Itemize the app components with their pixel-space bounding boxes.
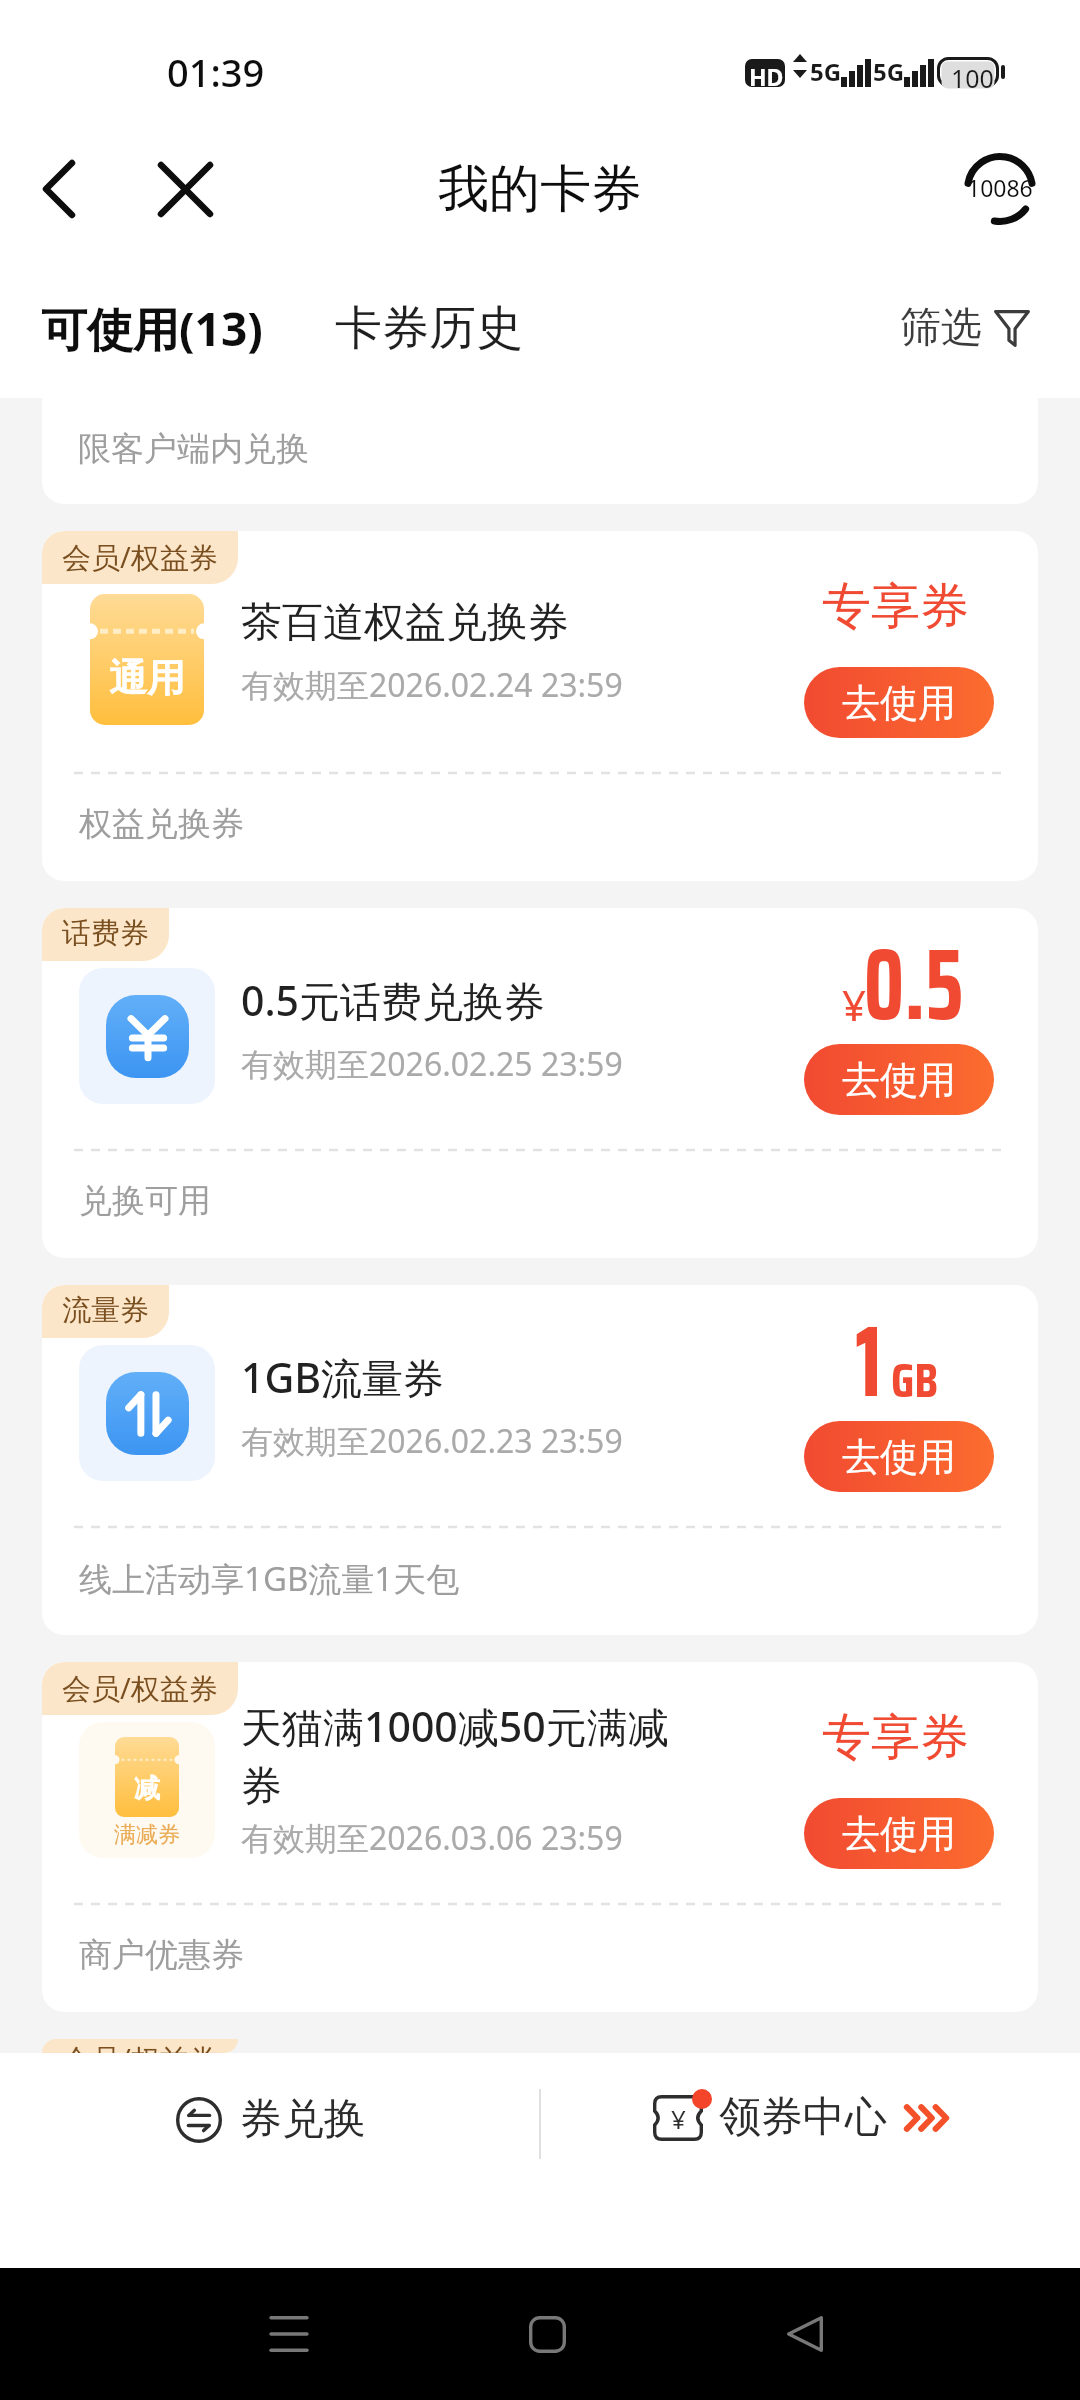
staticText: 兑换可用 — [79, 1180, 211, 1222]
staticText: 筛选 — [900, 302, 982, 354]
staticText: 商户优惠券 — [79, 1934, 244, 1976]
staticText: 权益兑换券 — [79, 803, 244, 845]
button[interactable]: 限客户端内兑换 — [42, 398, 1038, 504]
staticText: 专享券 — [822, 576, 969, 638]
button[interactable]: 去使用 — [804, 1044, 994, 1115]
staticText: 1GB流量券 — [241, 1349, 445, 1405]
button[interactable]: 会员/权益券 — [42, 1662, 1038, 2012]
staticText: 去使用 — [842, 1433, 956, 1481]
staticText: ¥ — [671, 2101, 686, 2136]
button[interactable]: Customer service 10086 — [952, 141, 1048, 237]
button[interactable]: 去使用 — [804, 667, 994, 738]
staticText: 卡券历史 — [335, 299, 523, 358]
staticText: 0.5元话费兑换券 — [241, 972, 546, 1028]
button[interactable]: Recents — [239, 2284, 339, 2384]
staticText: 可使用(13) — [41, 297, 263, 360]
staticText: 满减券 — [114, 1821, 180, 1849]
staticText: 1 — [855, 1285, 882, 1439]
staticText: 专享券 — [822, 1707, 969, 1769]
staticText: 去使用 — [842, 679, 956, 727]
button[interactable]: 流量券 — [42, 1285, 1038, 1635]
staticText: 会员/权益券 — [62, 537, 218, 577]
staticText: 天猫满1000减50元满减券 — [241, 1698, 703, 1812]
staticText: 有效期至2026.02.23 23:59 — [241, 1419, 623, 1463]
staticText: 会员/权益券 — [62, 2039, 218, 2053]
staticText: 减 — [134, 1772, 160, 1805]
staticText: 5G — [873, 55, 905, 88]
button[interactable]: ¥ — [645, 2085, 959, 2150]
staticText: 话费券 — [62, 915, 149, 952]
button[interactable]: Home — [497, 2284, 597, 2384]
staticText: 去使用 — [842, 1810, 956, 1858]
staticText: ¥ — [842, 976, 867, 1033]
staticText: 限客户端内兑换 — [78, 428, 309, 470]
button[interactable]: 券兑换 — [168, 2087, 374, 2152]
staticText: 去使用 — [842, 1056, 956, 1104]
staticText: 通用 — [109, 654, 185, 702]
button[interactable]: Back — [755, 2284, 855, 2384]
button[interactable]: 可使用(13) — [0, 279, 273, 378]
staticText: 有效期至2026.02.25 23:59 — [241, 1042, 623, 1086]
button[interactable]: 会员/权益券 — [42, 531, 1038, 881]
button[interactable]: Back — [14, 144, 104, 234]
staticText: 01:39 — [167, 46, 265, 98]
staticText: 100 — [951, 61, 994, 95]
button[interactable]: 话费券 — [42, 908, 1038, 1258]
button[interactable]: Close — [140, 144, 230, 234]
staticText: GB — [891, 1343, 938, 1419]
button[interactable]: 去使用 — [804, 1421, 994, 1492]
button[interactable]: 去使用 — [804, 1798, 994, 1869]
button[interactable]: 筛选 — [894, 290, 1036, 366]
staticText: 有效期至2026.02.24 23:59 — [241, 663, 623, 707]
staticText: 0.5 — [864, 908, 964, 1062]
staticText: 领券中心 — [719, 2091, 887, 2144]
staticText: 流量券 — [62, 1292, 149, 1329]
staticText: 茶百道权益兑换券 — [241, 597, 569, 649]
staticText: 线上活动享1GB流量1天包 — [79, 1556, 460, 1601]
button[interactable]: 卡券历史 — [325, 281, 533, 376]
staticText: 5G — [810, 55, 842, 88]
staticText: 10086 — [967, 172, 1033, 203]
staticText: 会员/权益券 — [62, 1668, 218, 1708]
staticText: 券兑换 — [240, 2093, 366, 2146]
staticText: 我的卡券 — [438, 157, 642, 221]
staticText: 有效期至2026.03.06 23:59 — [241, 1816, 623, 1860]
staticText: HD — [749, 61, 784, 92]
